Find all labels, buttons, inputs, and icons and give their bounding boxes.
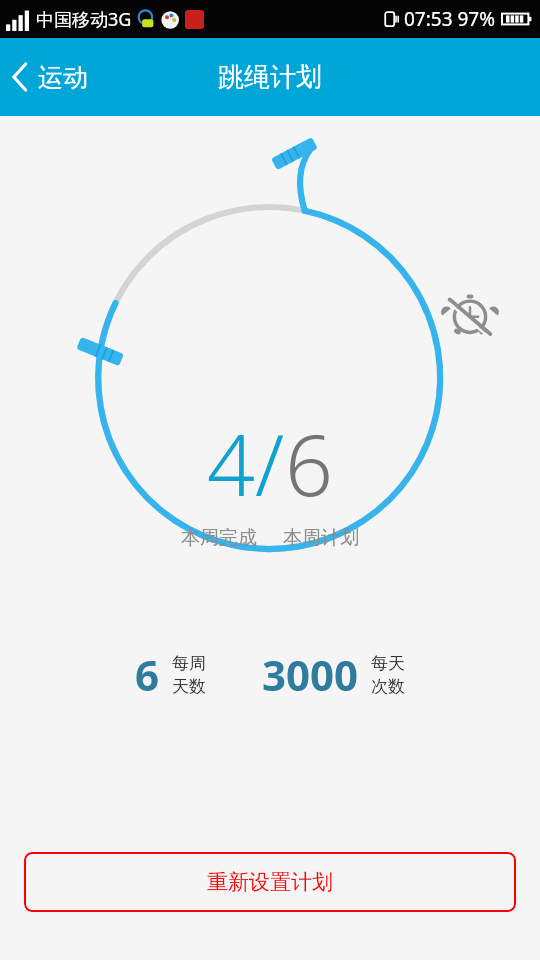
staticText: 每周 — [172, 653, 206, 674]
button[interactable]: 运动 — [12, 38, 88, 116]
staticText: 天数 — [172, 676, 206, 697]
staticText: 本周完成 — [181, 526, 257, 550]
staticText: 中国移动3G — [36, 7, 132, 32]
staticText: 次数 — [371, 676, 405, 697]
staticText: 6 — [285, 406, 333, 520]
button[interactable]: Alarm off — [440, 284, 500, 344]
staticText: 6 — [135, 646, 160, 703]
staticText: 每天 — [371, 653, 405, 674]
staticText: 4/ — [207, 406, 285, 520]
staticText: 本周计划 — [283, 526, 359, 550]
button[interactable]: 重新设置计划 — [24, 852, 516, 912]
staticText: 跳绳计划 — [218, 61, 322, 94]
staticText: 运动 — [38, 62, 88, 93]
staticText: 3000 — [262, 646, 359, 703]
staticText: 重新设置计划 — [207, 869, 333, 895]
staticText: 07:53 97% — [404, 6, 496, 32]
